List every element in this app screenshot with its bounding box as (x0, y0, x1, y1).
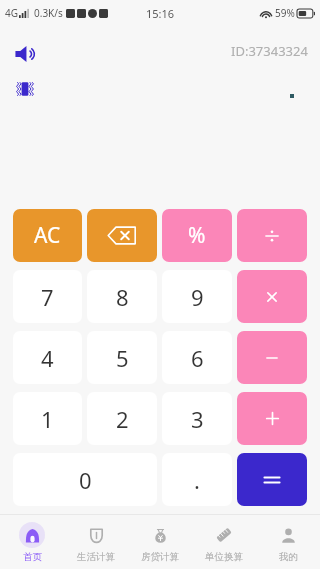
button[interactable]: 3 (162, 392, 232, 445)
staticText: 生活计算 (77, 551, 115, 563)
staticText: 我的 (279, 551, 298, 563)
button[interactable]: 4 (13, 331, 82, 384)
button[interactable]: Backspace (87, 209, 157, 262)
staticText: 2 (116, 404, 129, 434)
button[interactable]: 7 (13, 270, 82, 323)
button[interactable]: 8 (87, 270, 157, 323)
button[interactable]: 单位换算 (192, 515, 256, 569)
staticText: . (194, 465, 200, 495)
staticText: 单位换算 (205, 551, 243, 563)
button[interactable]: 6 (162, 331, 232, 384)
button[interactable]: Vibrate (10, 74, 40, 104)
button[interactable]: 1 (13, 392, 82, 445)
button[interactable]: % (162, 209, 232, 262)
button[interactable]: 9 (162, 270, 232, 323)
staticText: 1 (41, 404, 54, 434)
staticText: 0 (79, 465, 92, 495)
staticText: 首页 (23, 551, 42, 563)
staticText: 8 (116, 282, 129, 312)
staticText: 3 (191, 404, 204, 434)
staticText: 15:16 (146, 6, 175, 21)
button[interactable]: Multiply (237, 270, 307, 323)
staticText: 4 (41, 343, 54, 373)
button[interactable]: 2 (87, 392, 157, 445)
staticText: % (188, 221, 206, 250)
button[interactable]: . (162, 453, 232, 506)
staticText: 5 (116, 343, 129, 373)
button[interactable]: 房贷计算 (128, 515, 192, 569)
button[interactable]: 首页 (0, 515, 64, 569)
button[interactable]: Equals (237, 453, 307, 506)
button[interactable] (237, 209, 307, 262)
staticText: 0.3K/s (34, 6, 63, 20)
button[interactable]: Minus (237, 331, 307, 384)
staticText: 7 (41, 282, 54, 312)
button[interactable]: 5 (87, 331, 157, 384)
staticText: ID:37343324 (231, 42, 308, 60)
staticText: 4G (5, 6, 18, 20)
button[interactable]: 我的 (256, 515, 320, 569)
staticText: AC (34, 221, 61, 250)
button[interactable]: 0 (13, 453, 157, 506)
staticText: 房贷计算 (141, 551, 179, 563)
staticText: 59% (275, 6, 295, 20)
button[interactable]: Sound (10, 38, 42, 70)
button[interactable]: AC (13, 209, 82, 262)
button[interactable]: 生活计算 (64, 515, 128, 569)
button[interactable]: Plus (237, 392, 307, 445)
staticText: 6 (191, 343, 204, 373)
staticText: 9 (191, 282, 204, 312)
